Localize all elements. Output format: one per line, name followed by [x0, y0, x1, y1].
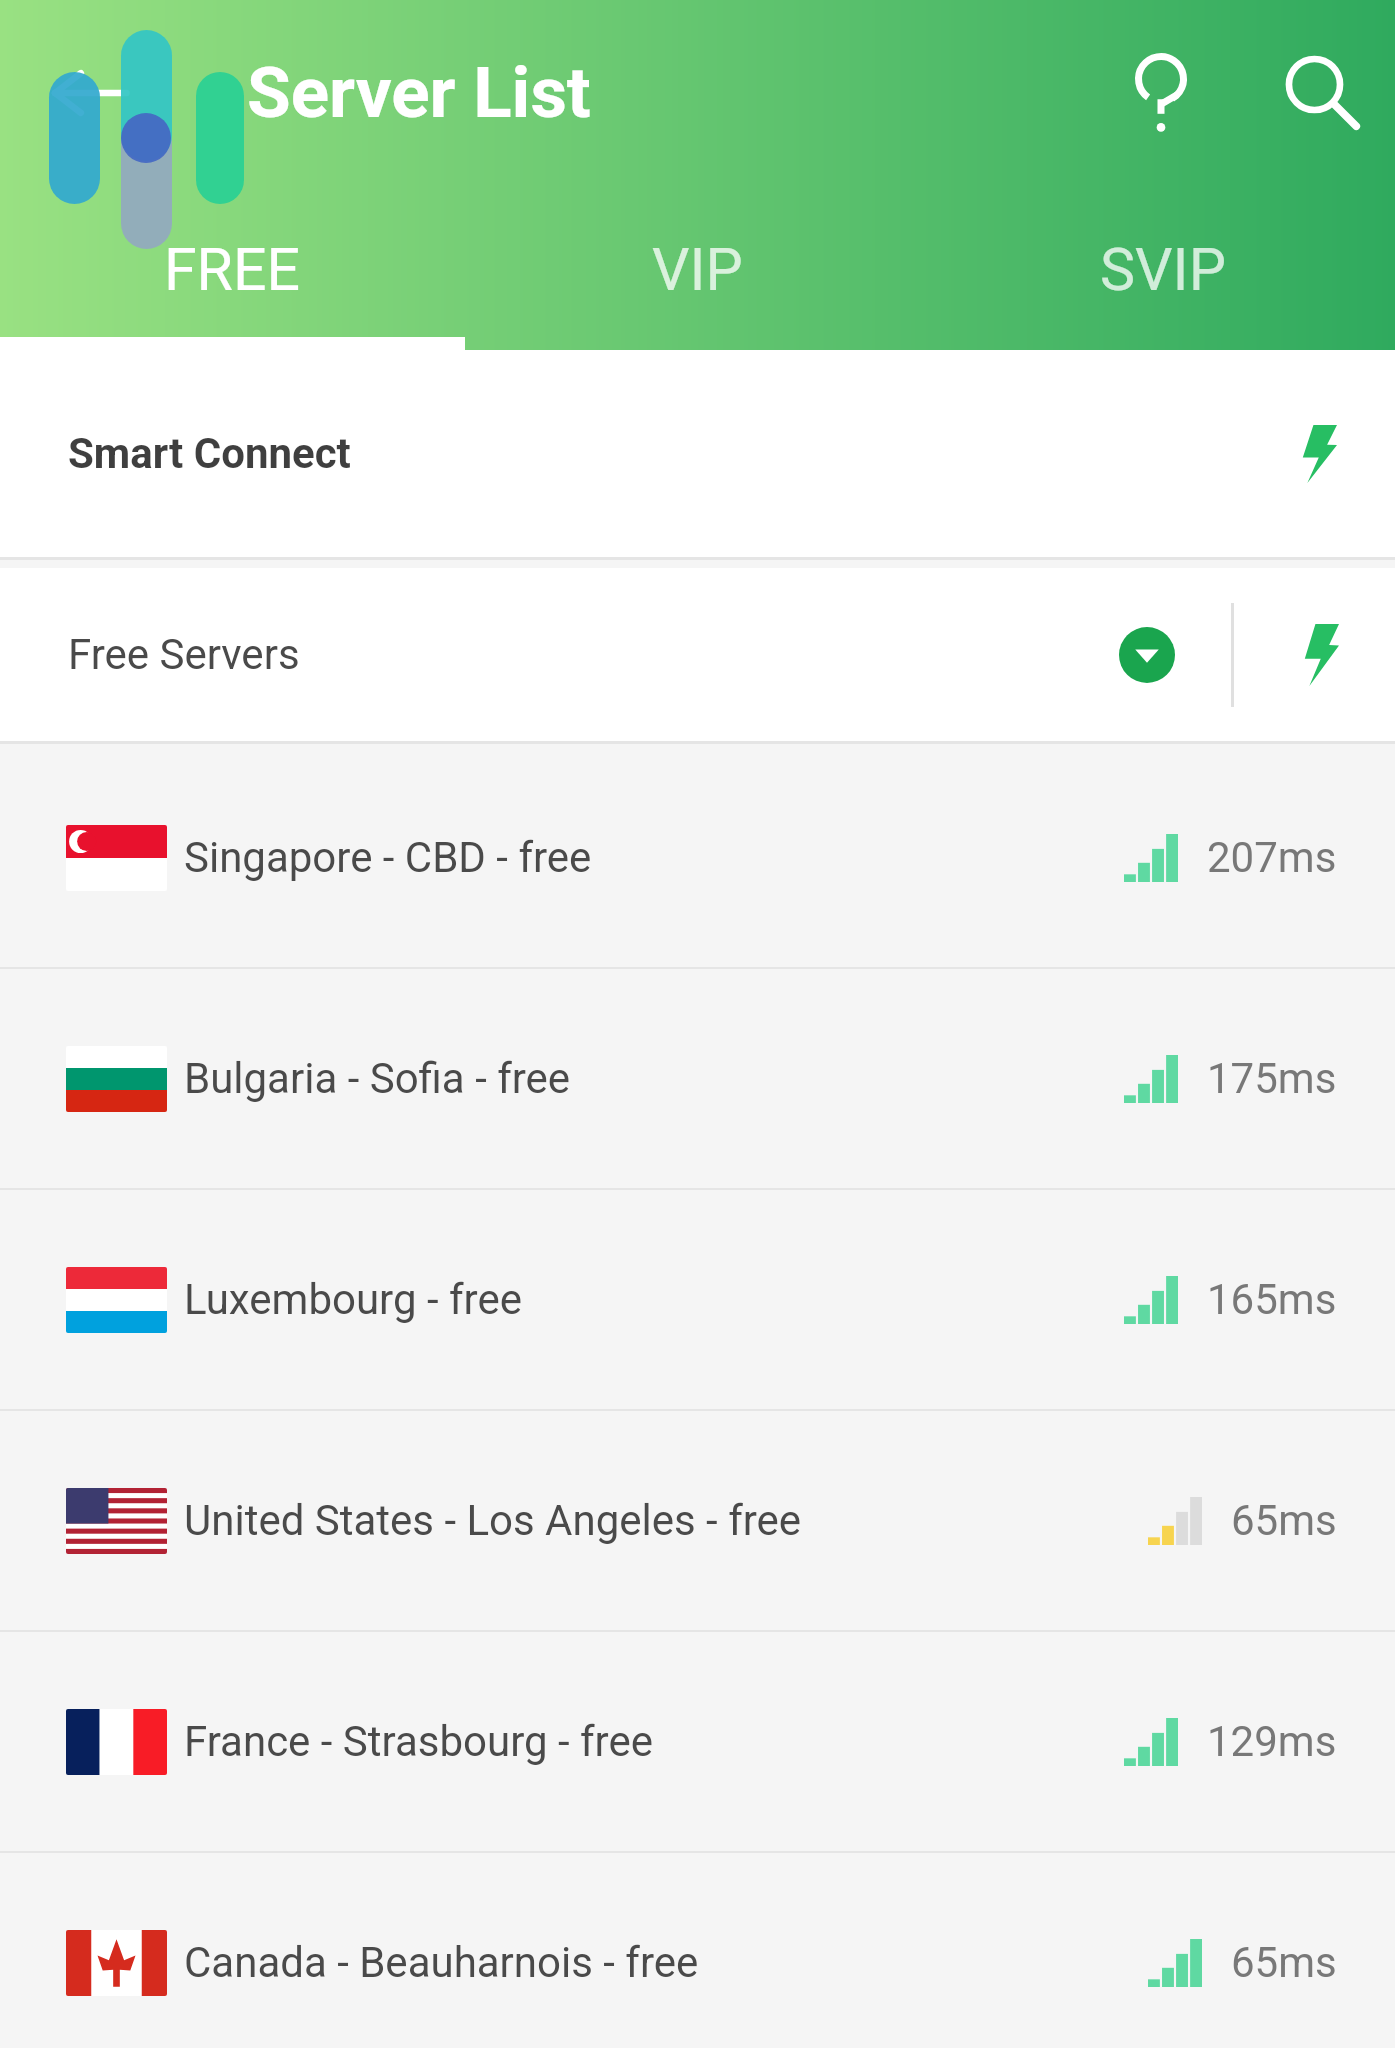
button[interactable]: Canada - Beauharnois - free	[0, 1853, 1395, 2048]
button[interactable]: France - Strasbourg - free	[0, 1632, 1395, 1851]
staticText: Luxembourg - free	[184, 1275, 522, 1324]
staticText: 207ms	[1207, 833, 1337, 882]
staticText: Bulgaria - Sofia - free	[184, 1054, 571, 1103]
button[interactable]: Quick connect	[1299, 425, 1337, 483]
button[interactable]: Help	[1071, 0, 1251, 185]
button[interactable]: United States - Los Angeles - free	[0, 1411, 1395, 1630]
staticText: VIP	[652, 235, 743, 304]
staticText: FREE	[164, 235, 301, 304]
staticText: 129ms	[1207, 1717, 1337, 1766]
button[interactable]: Free Servers	[0, 568, 1395, 741]
staticText: France - Strasbourg - free	[184, 1717, 653, 1766]
staticText: Singapore - CBD - free	[184, 833, 592, 882]
button[interactable]: VIP	[465, 193, 930, 350]
staticText: Canada - Beauharnois - free	[184, 1938, 699, 1987]
button[interactable]: Connect to free servers	[1301, 624, 1339, 686]
button[interactable]: Bulgaria - Sofia - free	[0, 969, 1395, 1188]
button[interactable]: SVIP	[930, 193, 1395, 350]
button[interactable]: Search	[1251, 0, 1395, 185]
button[interactable]: FREE	[0, 193, 465, 350]
staticText: United States - Los Angeles - free	[184, 1496, 802, 1545]
button[interactable]: Luxembourg - free	[0, 1190, 1395, 1409]
staticText: Free Servers	[68, 630, 300, 679]
button[interactable]: Smart Connect	[0, 350, 1395, 557]
staticText: Smart Connect	[68, 429, 351, 478]
staticText: 165ms	[1207, 1275, 1337, 1324]
staticText: Server List	[247, 51, 591, 134]
button[interactable]: Expand	[1119, 627, 1175, 683]
staticText: 65ms	[1231, 1496, 1337, 1545]
button[interactable]: Singapore - CBD - free	[0, 748, 1395, 967]
staticText: 65ms	[1231, 1938, 1337, 1987]
button[interactable]: Back	[0, 0, 150, 185]
staticText: 175ms	[1207, 1054, 1337, 1103]
staticText: SVIP	[1100, 235, 1226, 304]
